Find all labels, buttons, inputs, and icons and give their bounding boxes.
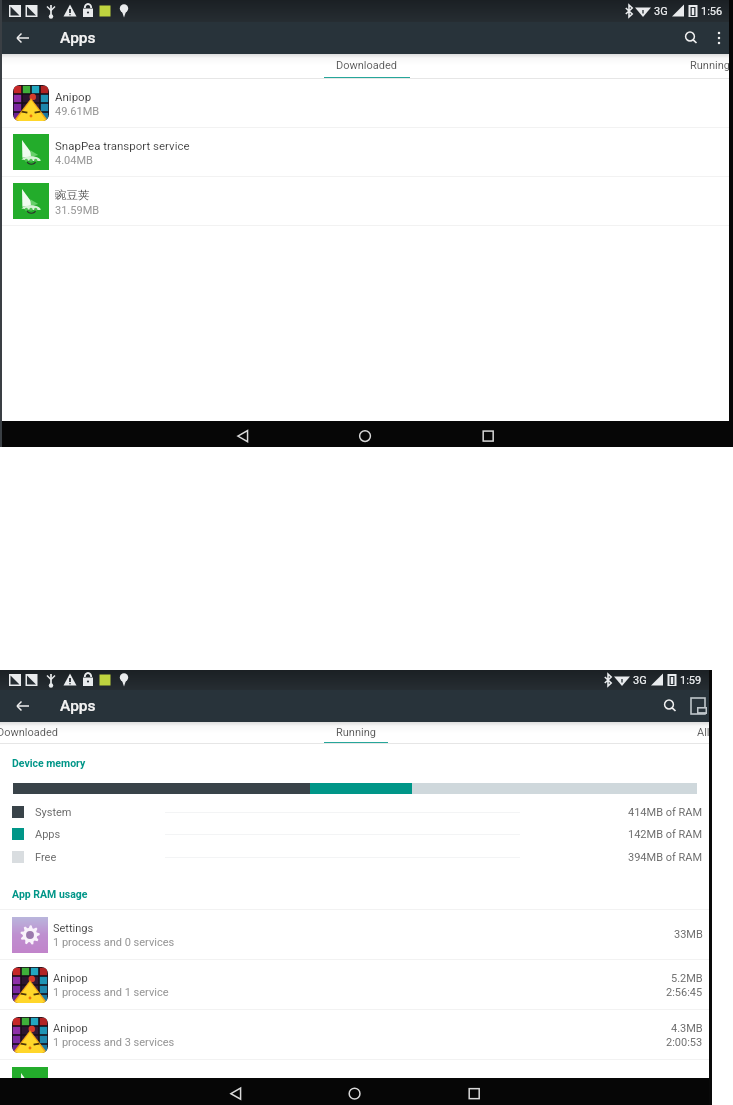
- staticText: 3G: [654, 5, 668, 18]
- button[interactable]: Anipop: [0, 79, 733, 127]
- staticText: Running: [336, 726, 376, 739]
- staticText: All: [697, 726, 710, 739]
- button[interactable]: 豌豆荚: [0, 177, 733, 225]
- staticText: 2:00:53: [666, 1036, 703, 1049]
- staticText: 394MB of RAM: [628, 851, 703, 864]
- staticText: 31.59MB: [55, 204, 100, 217]
- staticText: 414MB of RAM: [628, 806, 703, 819]
- staticText: System: [35, 806, 72, 819]
- staticText: 1:59: [680, 674, 702, 687]
- button[interactable]: Anipop: [0, 1010, 712, 1059]
- button[interactable]: Search: [656, 692, 684, 720]
- button[interactable]: Settings: [0, 910, 712, 959]
- staticText: Running: [690, 59, 730, 72]
- staticText: Free: [35, 851, 57, 864]
- staticText: Anipop: [53, 972, 88, 985]
- staticText: 1 process and 3 services: [53, 1036, 175, 1049]
- button[interactable]: Back: [11, 26, 35, 50]
- staticText: 1 process and 0 services: [53, 936, 175, 949]
- staticText: Apps: [35, 828, 61, 841]
- staticText: Apps: [60, 697, 96, 715]
- staticText: 2:56:45: [666, 986, 703, 999]
- staticText: 5.2MB: [671, 972, 703, 985]
- staticText: App RAM usage: [12, 888, 88, 900]
- staticText: Device memory: [12, 757, 86, 769]
- button[interactable]: System: [0, 806, 712, 819]
- button[interactable]: Back: [11, 694, 35, 718]
- staticText: SnapPea transport service: [55, 139, 190, 152]
- staticText: 142MB of RAM: [628, 828, 703, 841]
- staticText: Downloaded: [336, 59, 398, 72]
- staticText: 49.61MB: [55, 105, 100, 118]
- staticText: 3G: [633, 674, 647, 687]
- staticText: 4.3MB: [671, 1022, 703, 1035]
- staticText: Settings: [53, 922, 94, 935]
- staticText: Anipop: [53, 1022, 88, 1035]
- staticText: 4.04MB: [55, 154, 93, 167]
- staticText: Apps: [60, 29, 96, 47]
- button[interactable]: Apps: [0, 828, 712, 841]
- staticText: 33MB: [674, 928, 703, 941]
- button[interactable]: Free: [0, 851, 712, 864]
- button[interactable]: SnapPea transport service: [0, 128, 733, 176]
- staticText: Anipop: [55, 90, 92, 103]
- staticText: 豌豆荚: [55, 188, 90, 202]
- button[interactable]: Anipop: [0, 960, 712, 1009]
- staticText: 1:56: [701, 5, 723, 18]
- button[interactable]: More options: [705, 24, 733, 52]
- button[interactable]: SnapPea transport service: [0, 1060, 712, 1105]
- staticText: Downloaded: [0, 726, 59, 739]
- button[interactable]: Show cached processes: [684, 692, 712, 720]
- staticText: 1 process and 1 service: [53, 986, 169, 999]
- button[interactable]: Search: [677, 24, 705, 52]
